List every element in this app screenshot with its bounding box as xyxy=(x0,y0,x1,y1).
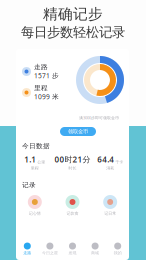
staticText: 商城 xyxy=(91,250,99,255)
staticText: 领取金币 xyxy=(68,128,88,135)
staticText: 记日常 xyxy=(104,211,116,216)
button[interactable]: 发现 xyxy=(61,238,84,260)
staticText: 里程 xyxy=(34,84,48,92)
staticText: 记饮食 xyxy=(66,211,78,216)
button[interactable]: 记饮食 xyxy=(54,195,91,216)
staticText: 千卡 xyxy=(115,160,123,165)
button[interactable]: 领取金币 xyxy=(60,127,96,136)
button[interactable]: 记心情 xyxy=(16,195,54,216)
staticText: 1571 步 xyxy=(34,71,59,80)
staticText: 00时21分 xyxy=(54,154,90,165)
button[interactable]: 我的 xyxy=(106,238,129,260)
button[interactable]: 今日之星 xyxy=(39,238,61,260)
staticText: 时长 xyxy=(68,166,76,170)
staticText: 64.4 xyxy=(97,154,114,165)
staticText: 我的 xyxy=(114,250,122,255)
staticText: 今日之星 xyxy=(42,250,58,255)
staticText: 发现 xyxy=(68,250,76,255)
staticText: 1099 米 xyxy=(34,92,59,101)
staticText: 消耗 xyxy=(106,166,114,170)
button[interactable]: 记日常 xyxy=(91,195,129,216)
staticText: 公里 xyxy=(37,160,45,165)
button[interactable]: 走路 xyxy=(16,238,39,260)
staticText: 记心情 xyxy=(29,211,41,216)
staticText: 里程 xyxy=(31,166,39,170)
staticText: 今日数据 xyxy=(22,142,50,150)
staticText: 满3000步即可领取金币 xyxy=(79,115,119,120)
staticText: 走路 xyxy=(23,250,31,255)
staticText: 走路 xyxy=(34,63,48,71)
staticText: 精确记步 xyxy=(43,5,103,23)
staticText: 记录 xyxy=(22,181,36,189)
button[interactable]: 商城 xyxy=(84,238,106,260)
staticText: 1.1 xyxy=(24,154,36,165)
staticText: 每日步数轻松记录 xyxy=(21,24,125,40)
